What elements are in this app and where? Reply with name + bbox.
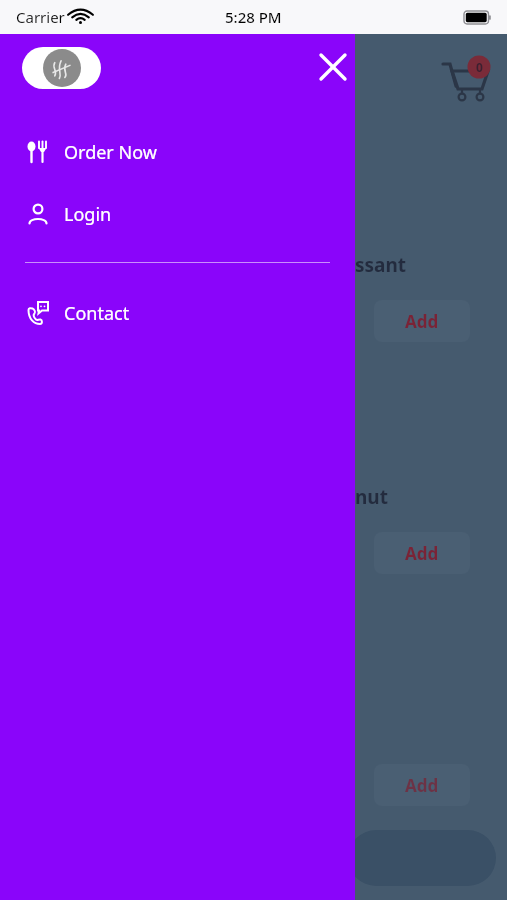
staticText: Add xyxy=(405,310,439,333)
staticText: ssant xyxy=(355,252,407,278)
button[interactable]: Add xyxy=(374,300,470,342)
button[interactable]: Order Now xyxy=(0,132,355,172)
staticText: Login xyxy=(64,202,112,227)
button[interactable]: Checkout xyxy=(348,830,496,886)
staticText: Add xyxy=(405,774,439,797)
staticText: 0 xyxy=(474,59,485,75)
staticText: 5:28 PM xyxy=(225,7,282,27)
button[interactable]: Contact xyxy=(0,293,355,333)
button[interactable]: Login xyxy=(0,194,355,234)
staticText: Add xyxy=(405,542,439,565)
button[interactable]: Close menu xyxy=(310,44,356,90)
button[interactable]: Add xyxy=(374,532,470,574)
button[interactable]: Cart xyxy=(437,55,495,110)
staticText: Carrier xyxy=(16,7,65,27)
staticText: Order Now xyxy=(64,140,157,165)
button[interactable]: Logo xyxy=(22,47,101,89)
staticText: nut xyxy=(355,484,388,510)
staticText: Contact xyxy=(64,301,130,326)
button[interactable]: Add xyxy=(374,764,470,806)
